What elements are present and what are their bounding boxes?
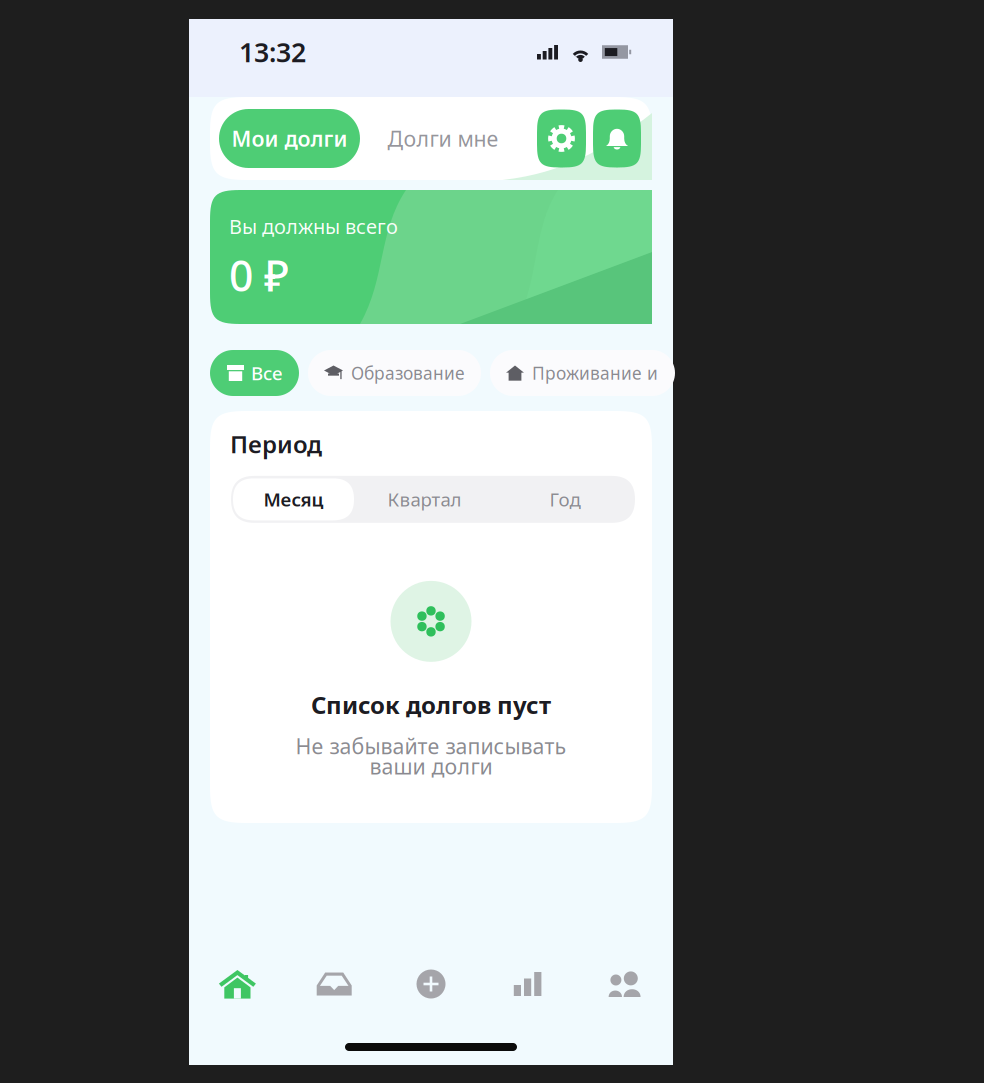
staticText: Год — [549, 487, 580, 512]
button[interactable]: Home — [189, 953, 286, 1015]
button[interactable]: Contacts — [576, 953, 673, 1015]
staticText: Период — [230, 428, 322, 460]
button[interactable]: Settings — [537, 109, 586, 167]
staticText: 0 ₽ — [229, 247, 289, 303]
staticText: Все — [251, 361, 282, 385]
button[interactable]: Add debt — [383, 953, 479, 1015]
staticText: Проживание и — [532, 361, 658, 384]
button[interactable]: Мои долги — [219, 109, 360, 168]
staticText: ваши долги — [369, 752, 492, 780]
button[interactable]: Год — [495, 476, 635, 523]
staticText: Не забывайте записывать — [295, 732, 566, 760]
staticText: Долги мне — [387, 124, 498, 153]
button[interactable]: Все — [210, 350, 299, 396]
staticText: Месяц — [263, 487, 323, 512]
staticText: Образование — [351, 361, 465, 384]
button[interactable]: Notifications — [593, 109, 641, 167]
button[interactable]: Долги мне — [360, 109, 526, 168]
button[interactable]: Квартал — [354, 476, 495, 523]
button[interactable]: Inbox — [286, 953, 383, 1015]
button[interactable]: Месяц — [233, 478, 354, 520]
button[interactable]: Образование — [308, 350, 481, 396]
button[interactable]: Проживание и — [490, 350, 675, 396]
button[interactable]: Statistics — [479, 953, 576, 1015]
staticText: 13:32 — [239, 34, 306, 70]
staticText: Список долгов пуст — [311, 689, 551, 721]
staticText: Вы должны всего — [229, 213, 398, 240]
staticText: Квартал — [387, 487, 461, 512]
staticText: Мои долги — [231, 124, 347, 153]
